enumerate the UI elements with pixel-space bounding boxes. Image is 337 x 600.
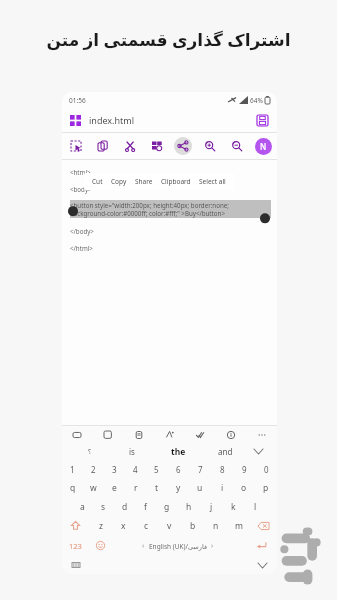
button[interactable]: Copy [94, 137, 112, 155]
staticText: index.html [89, 114, 135, 126]
button[interactable]: w [83, 478, 104, 497]
button[interactable]: 7 [189, 460, 211, 478]
button[interactable]: Enter [245, 535, 277, 556]
button[interactable]: 2 [83, 460, 104, 478]
staticText: q [70, 482, 76, 494]
button[interactable]: More [255, 428, 269, 442]
button[interactable]: Spell check [193, 428, 207, 442]
button[interactable]: Cut [121, 137, 139, 155]
button[interactable]: 123 [62, 535, 89, 556]
button[interactable]: l [244, 497, 266, 516]
button[interactable]: m [227, 516, 250, 535]
button[interactable]: 6 [167, 460, 189, 478]
staticText: 8 [220, 464, 225, 475]
staticText: background-color:#0000ff; color:#fff;" >… [70, 209, 225, 217]
button[interactable]: Save [255, 113, 269, 127]
button[interactable]: Expand [246, 443, 271, 460]
button[interactable]: Clipboard [161, 173, 191, 190]
button[interactable]: t [146, 478, 167, 497]
button[interactable]: Hide keyboard [255, 558, 269, 572]
button[interactable]: b [181, 516, 204, 535]
staticText: Cut [92, 177, 103, 186]
button[interactable]: Share [135, 173, 153, 190]
button[interactable]: 9 [233, 460, 255, 478]
button[interactable]: 0 [255, 460, 277, 478]
staticText: <button style="width:200px; height:40px;… [70, 201, 229, 209]
staticText: n [213, 520, 219, 532]
button[interactable]: Clipboard [132, 428, 146, 442]
button[interactable]: ⸮ [68, 443, 111, 460]
button[interactable]: e [104, 478, 125, 497]
button[interactable]: Translate [163, 428, 177, 442]
button[interactable]: Select [67, 137, 85, 155]
staticText: w [90, 482, 97, 494]
button[interactable]: GIF [70, 428, 84, 442]
button[interactable]: h [178, 497, 200, 516]
button[interactable]: Cut [92, 173, 103, 190]
button[interactable]: o [233, 478, 255, 497]
button[interactable]: y [167, 478, 189, 497]
button[interactable]: is [111, 443, 153, 460]
staticText: t [155, 482, 159, 494]
staticText: 0 [264, 464, 269, 475]
button[interactable]: Zoom out [228, 137, 246, 155]
button[interactable]: N [255, 138, 272, 155]
button[interactable]: Backspace [250, 516, 277, 535]
staticText: d [122, 501, 128, 513]
staticText: ⸮ [88, 447, 92, 457]
button[interactable]: Stickers [101, 428, 115, 442]
button[interactable]: Shift [62, 516, 89, 535]
button[interactable]: j [200, 497, 222, 516]
staticText: o [241, 482, 247, 494]
staticText: <body> [70, 185, 92, 193]
button[interactable]: Menu [70, 108, 269, 132]
staticText: g [164, 501, 170, 513]
button[interactable]: Copy [111, 173, 127, 190]
button[interactable]: s [93, 497, 114, 516]
button[interactable]: u [189, 478, 211, 497]
button[interactable]: Zoom in [201, 137, 219, 155]
button[interactable]: 3 [104, 460, 125, 478]
button[interactable]: a [72, 497, 93, 516]
button[interactable]: f [135, 497, 156, 516]
staticText: <html> [70, 168, 91, 176]
button[interactable]: ‹ [111, 535, 245, 556]
staticText: p [263, 482, 269, 494]
button[interactable]: z [89, 516, 112, 535]
staticText: 4 [133, 464, 138, 475]
staticText: 7 [198, 464, 203, 475]
button[interactable]: i [211, 478, 233, 497]
staticText: s [101, 501, 106, 513]
button[interactable]: 1 [62, 460, 83, 478]
button[interactable]: 4 [125, 460, 146, 478]
staticText: 5 [154, 464, 159, 475]
button[interactable]: r [125, 478, 146, 497]
staticText: 3 [112, 464, 117, 475]
button[interactable]: n [204, 516, 227, 535]
button[interactable]: Share [174, 137, 192, 155]
button[interactable]: g [156, 497, 178, 516]
button[interactable]: k [222, 497, 244, 516]
button[interactable]: c [135, 516, 158, 535]
staticText: </html> [70, 244, 93, 252]
other: Menu [70, 115, 81, 126]
staticText: h [186, 501, 192, 513]
staticText: v [167, 520, 172, 532]
button[interactable]: Select all [199, 173, 226, 190]
button[interactable]: v [158, 516, 181, 535]
button[interactable]: Keyboard settings [70, 559, 82, 571]
button[interactable]: Info [224, 428, 238, 442]
staticText: </body> [70, 227, 94, 235]
button[interactable]: q [62, 478, 83, 497]
button[interactable]: Paste [148, 137, 166, 155]
button[interactable]: Emoji [89, 535, 111, 556]
button[interactable]: and [204, 443, 246, 460]
button[interactable]: 5 [146, 460, 167, 478]
button[interactable]: the [153, 443, 204, 460]
button[interactable]: p [255, 478, 277, 497]
staticText: Share [135, 177, 153, 186]
button[interactable]: d [114, 497, 135, 516]
button[interactable]: 8 [211, 460, 233, 478]
staticText: 01:56 [69, 96, 86, 105]
button[interactable]: x [112, 516, 135, 535]
